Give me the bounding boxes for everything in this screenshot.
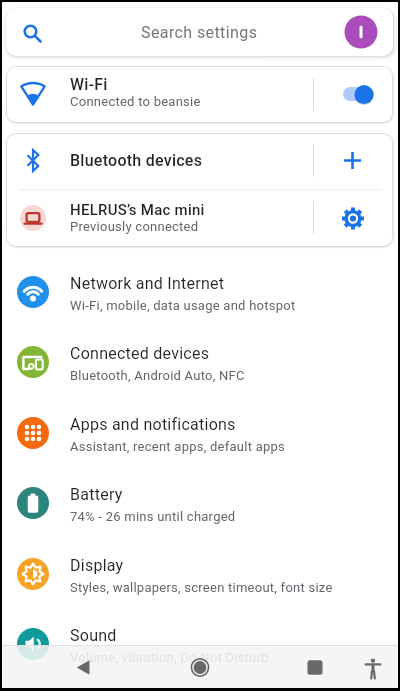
button[interactable] xyxy=(326,74,386,115)
staticText: Bluetooth devices xyxy=(70,151,203,170)
button[interactable] xyxy=(175,645,225,688)
staticText: Previously connected xyxy=(70,219,199,234)
staticText: Wi-Fi xyxy=(70,75,108,94)
button[interactable] xyxy=(326,139,386,183)
staticText: Wi-Fi, mobile, data usage and hotspot xyxy=(70,298,296,313)
button[interactable] xyxy=(6,190,393,247)
staticText: Network and Internet xyxy=(70,274,225,293)
staticText: HELRUS’s Mac mini xyxy=(70,201,205,219)
staticText: Bluetooth, Android Auto, NFC xyxy=(70,368,245,383)
button[interactable] xyxy=(6,133,393,190)
button[interactable]: Connected devices xyxy=(2,327,398,397)
button[interactable] xyxy=(345,16,377,48)
staticText: Apps and notifications xyxy=(70,415,236,434)
staticText: Connected to beansie xyxy=(70,94,201,109)
button[interactable] xyxy=(64,645,114,688)
button[interactable]: Wi-Fi xyxy=(6,66,393,123)
staticText: Assistant, recent apps, default apps xyxy=(70,439,286,454)
button[interactable] xyxy=(326,196,386,240)
button[interactable] xyxy=(350,645,396,688)
button[interactable]: Sound xyxy=(2,609,398,679)
staticText: Volume, vibration, Do Not Disturb xyxy=(70,650,269,665)
staticText: Search settings xyxy=(141,23,258,42)
staticText: Sound xyxy=(70,626,117,645)
staticText: Styles, wallpapers, screen timeout, font… xyxy=(70,580,333,595)
button[interactable] xyxy=(290,645,340,688)
button[interactable]: Search settings xyxy=(6,8,393,56)
button[interactable]: Display xyxy=(2,539,398,609)
button[interactable]: Network and Internet xyxy=(2,257,398,327)
button[interactable]: Battery xyxy=(2,468,398,538)
staticText: 74% - 26 mins until charged xyxy=(70,509,236,524)
staticText: Display xyxy=(70,556,124,575)
button[interactable]: Apps and notifications xyxy=(2,398,398,468)
staticText: Battery xyxy=(70,485,123,504)
staticText: Connected devices xyxy=(70,344,210,363)
